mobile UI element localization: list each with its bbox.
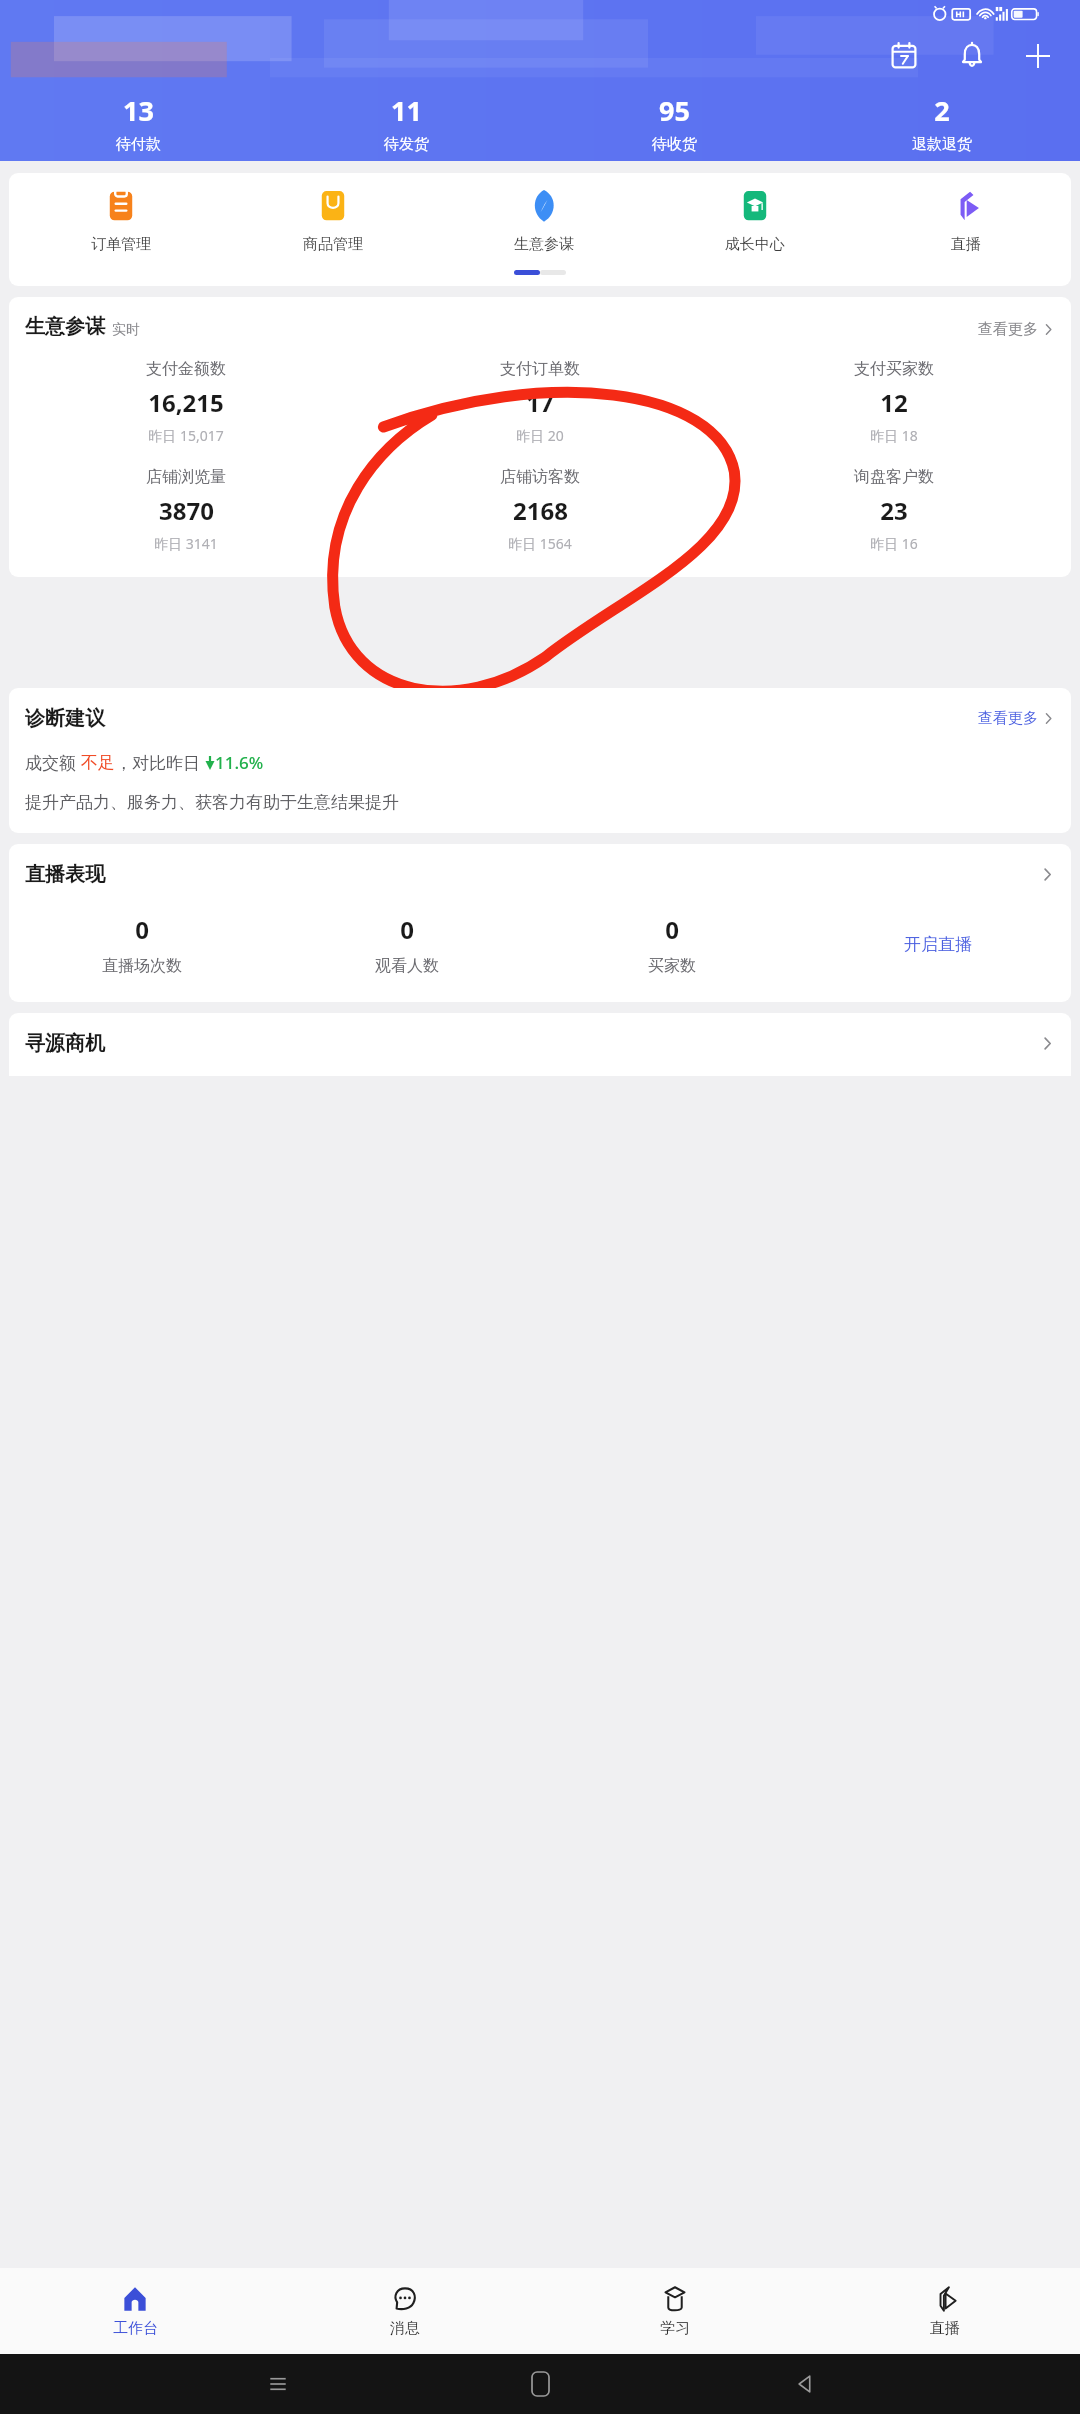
staticText: 支付订单数 <box>500 359 580 379</box>
staticText: 学习 <box>660 2319 690 2338</box>
button[interactable]: 工作台 <box>0 2268 270 2354</box>
button[interactable]: 查看更多 <box>978 709 1055 728</box>
button[interactable]: 0 <box>274 913 539 976</box>
button[interactable]: 95 <box>540 88 808 158</box>
button[interactable]: 生意参谋 <box>438 189 649 254</box>
button[interactable]: 支付买家数 <box>717 359 1071 445</box>
staticText: 询盘客户数 <box>854 467 934 487</box>
staticText: 店铺浏览量 <box>146 467 226 487</box>
button[interactable]: Back <box>672 2373 935 2395</box>
button[interactable]: 直播表现 <box>25 862 1055 887</box>
staticText: 开启直播 <box>904 934 972 955</box>
button[interactable]: 开启直播 <box>805 934 1071 955</box>
button[interactable]: 成长中心 <box>649 189 860 254</box>
staticText: 2 <box>934 92 950 129</box>
staticText: 退款退货 <box>912 135 972 154</box>
staticText: 昨日 1564 <box>508 534 572 553</box>
staticText: 23 <box>880 494 908 527</box>
staticText: 昨日 16 <box>870 534 918 553</box>
staticText: 生意参谋 <box>25 314 105 339</box>
staticText: 昨日 15,017 <box>148 426 224 445</box>
staticText: 2168 <box>513 494 568 527</box>
staticText: 买家数 <box>648 956 696 976</box>
button[interactable]: 直播 <box>860 189 1071 254</box>
staticText: 不足 <box>81 752 115 773</box>
button[interactable]: 支付金额数 <box>9 359 363 445</box>
staticText: 订单管理 <box>91 235 151 254</box>
button[interactable]: Add <box>1016 34 1060 78</box>
button[interactable]: 店铺访客数 <box>363 467 717 553</box>
button[interactable]: 直播 <box>810 2268 1080 2354</box>
staticText: 昨日 18 <box>870 426 918 445</box>
staticText: 寻源商机 <box>25 1031 105 1056</box>
staticText: 11.6% <box>215 751 264 774</box>
button[interactable]: Home <box>409 2372 672 2396</box>
staticText: 昨日 20 <box>516 426 564 445</box>
staticText: 支付金额数 <box>146 359 226 379</box>
staticText: 成交额 <box>25 751 81 774</box>
staticText: 成长中心 <box>725 235 785 254</box>
button[interactable]: 学习 <box>540 2268 810 2354</box>
staticText: 待发货 <box>384 135 429 154</box>
staticText: 13 <box>123 92 154 129</box>
staticText: 实时 <box>112 321 140 339</box>
staticText: 16,215 <box>148 386 224 419</box>
staticText: 支付买家数 <box>854 359 934 379</box>
staticText: ，对比昨日 <box>115 751 205 774</box>
staticText: 直播表现 <box>25 862 105 887</box>
staticText: 查看更多 <box>978 320 1038 339</box>
button[interactable]: 13 <box>4 88 272 158</box>
staticText: 生意参谋 <box>514 235 574 254</box>
staticText: 0 <box>665 913 679 946</box>
button[interactable]: 店铺浏览量 <box>9 467 363 553</box>
staticText: 消息 <box>390 2319 420 2338</box>
staticText: 店铺访客数 <box>500 467 580 487</box>
button[interactable]: Calendar <box>882 34 926 78</box>
button[interactable]: 询盘客户数 <box>717 467 1071 553</box>
button[interactable]: 寻源商机 <box>9 1013 1071 1076</box>
staticText: 待收货 <box>652 135 697 154</box>
button[interactable]: 支付订单数 <box>363 359 717 445</box>
staticText: 观看人数 <box>375 956 439 976</box>
staticText: 直播场次数 <box>102 956 182 976</box>
button[interactable]: 11 <box>272 88 540 158</box>
button[interactable]: 0 <box>539 913 805 976</box>
staticText: 待付款 <box>116 135 161 154</box>
staticText: 12 <box>880 386 908 419</box>
button[interactable]: 订单管理 <box>15 189 227 254</box>
staticText: 商品管理 <box>303 235 363 254</box>
button[interactable]: Notifications <box>950 34 994 78</box>
staticText: 11 <box>391 92 422 129</box>
staticText: 3870 <box>159 494 214 527</box>
staticText: 诊断建议 <box>25 706 105 731</box>
staticText: 工作台 <box>113 2319 158 2338</box>
button[interactable]: Recent apps <box>146 2373 409 2395</box>
staticText: 查看更多 <box>978 709 1038 728</box>
staticText: 0 <box>135 913 149 946</box>
staticText: 17 <box>526 386 554 419</box>
staticText: 直播 <box>951 235 981 254</box>
button[interactable]: 商品管理 <box>227 189 438 254</box>
button[interactable]: 0 <box>9 913 274 976</box>
staticText: 0 <box>400 913 414 946</box>
staticText: 直播 <box>930 2319 960 2338</box>
staticText: 提升产品力、服务力、获客力有助于生意结果提升 <box>25 792 399 813</box>
button[interactable]: 2 <box>808 88 1076 158</box>
button[interactable]: 查看更多 <box>978 320 1055 339</box>
staticText: 昨日 3141 <box>154 534 218 553</box>
button[interactable]: 消息 <box>270 2268 540 2354</box>
staticText: 95 <box>659 92 690 129</box>
